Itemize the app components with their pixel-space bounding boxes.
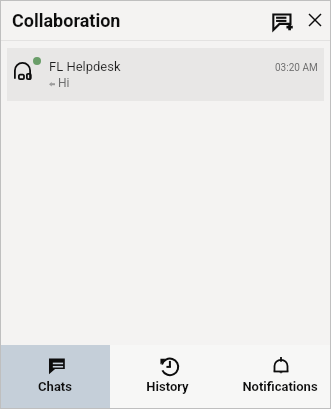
button[interactable]: Notifications <box>224 345 331 409</box>
button[interactable]: Chats <box>0 345 110 409</box>
button[interactable]: New chat <box>270 5 300 35</box>
staticText: Collaboration <box>12 10 121 31</box>
button[interactable]: FL Helpdesk <box>7 48 324 101</box>
staticText: FL Helpdesk <box>49 59 121 74</box>
button[interactable]: Close <box>300 5 330 35</box>
staticText: Notifications <box>242 379 318 394</box>
staticText: Chats <box>38 379 72 394</box>
staticText: History <box>146 379 189 394</box>
staticText: 03:20 AM <box>275 62 318 74</box>
button[interactable]: History <box>110 345 224 409</box>
staticText: Hi <box>58 76 70 90</box>
